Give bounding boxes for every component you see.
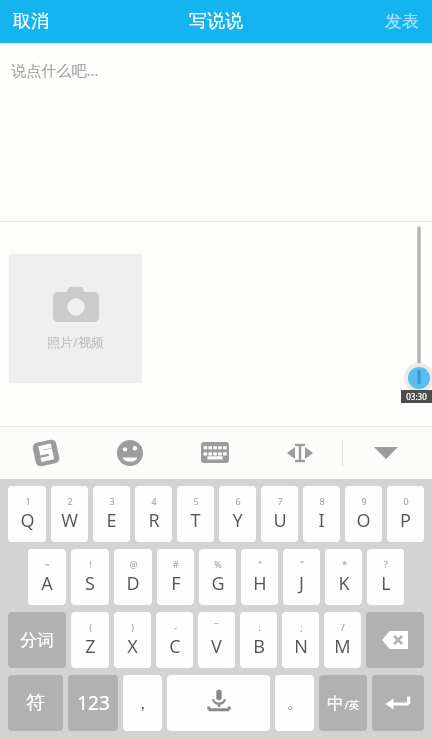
staticText: 4 bbox=[151, 495, 157, 507]
staticText: M bbox=[334, 634, 351, 659]
staticText: N bbox=[294, 634, 308, 659]
staticText: S bbox=[85, 571, 95, 596]
staticText: H bbox=[253, 571, 267, 596]
button[interactable]: 发表 bbox=[372, 0, 432, 43]
staticText: 写说说 bbox=[189, 10, 243, 33]
staticText: ; bbox=[300, 621, 303, 633]
button[interactable]: 符 bbox=[8, 675, 63, 731]
button[interactable]: 中 bbox=[319, 675, 367, 731]
button[interactable]: ! bbox=[71, 549, 109, 605]
staticText: “ bbox=[258, 558, 262, 570]
staticText: * bbox=[342, 558, 347, 570]
button[interactable]: ) bbox=[114, 612, 151, 668]
button[interactable]: * bbox=[325, 549, 362, 605]
button[interactable]: # bbox=[157, 549, 194, 605]
button[interactable]: 4 bbox=[135, 486, 172, 542]
staticText: P bbox=[400, 508, 411, 533]
button[interactable]: 分词 bbox=[8, 612, 66, 668]
button[interactable]: ? bbox=[367, 549, 404, 605]
staticText: ~ bbox=[44, 558, 50, 570]
staticText: 照片/视频 bbox=[47, 333, 104, 351]
button[interactable]: % bbox=[199, 549, 236, 605]
staticText: R bbox=[148, 508, 160, 533]
button[interactable]: 。 bbox=[275, 675, 314, 731]
button[interactable]: Space, voice input bbox=[167, 675, 270, 731]
staticText: K bbox=[338, 571, 350, 596]
staticText: /英 bbox=[344, 697, 360, 712]
staticText: Y bbox=[232, 508, 243, 533]
staticText: Q bbox=[20, 508, 35, 533]
button[interactable]: 8 bbox=[303, 486, 340, 542]
staticText: T bbox=[190, 508, 201, 533]
button[interactable]: Keyboard layout bbox=[172, 426, 257, 479]
staticText: 9 bbox=[361, 495, 367, 507]
staticText: - bbox=[174, 621, 177, 633]
button[interactable]: Emoji bbox=[88, 426, 172, 479]
button[interactable]: - bbox=[156, 612, 193, 668]
staticText: / bbox=[341, 621, 345, 633]
staticText: 6 bbox=[235, 495, 241, 507]
staticText: Z bbox=[85, 634, 96, 659]
button[interactable]: ” bbox=[283, 549, 320, 605]
button[interactable]: ; bbox=[282, 612, 319, 668]
staticText: V bbox=[211, 634, 222, 659]
button[interactable]: 取消 bbox=[0, 0, 62, 43]
button[interactable]: Move cursor bbox=[257, 426, 342, 479]
button[interactable]: 9 bbox=[345, 486, 382, 542]
button[interactable]: Backspace bbox=[366, 612, 424, 668]
button[interactable]: “ bbox=[241, 549, 278, 605]
staticText: 取消 bbox=[13, 10, 49, 33]
staticText: W bbox=[61, 508, 78, 533]
button[interactable]: / bbox=[324, 612, 361, 668]
button[interactable]: ¯ bbox=[198, 612, 235, 668]
staticText: ! bbox=[89, 558, 92, 570]
staticText: F bbox=[171, 571, 181, 596]
button[interactable]: @ bbox=[114, 549, 152, 605]
staticText: 说点什么吧... bbox=[11, 60, 99, 80]
button[interactable]: 123 bbox=[68, 675, 118, 731]
button[interactable]: Sogou input method bbox=[4, 426, 88, 479]
button[interactable]: Enter bbox=[372, 675, 424, 731]
button[interactable]: 0 bbox=[387, 486, 424, 542]
button[interactable]: 6 bbox=[219, 486, 256, 542]
staticText: U bbox=[273, 508, 287, 533]
button[interactable]: 3 bbox=[93, 486, 130, 542]
button[interactable]: : bbox=[240, 612, 277, 668]
staticText: L bbox=[381, 571, 391, 596]
staticText: 中 bbox=[327, 693, 344, 714]
staticText: G bbox=[211, 571, 225, 596]
staticText: ， bbox=[134, 693, 151, 714]
staticText: D bbox=[126, 571, 140, 596]
staticText: 8 bbox=[319, 495, 325, 507]
staticText: % bbox=[214, 558, 222, 570]
staticText: 123 bbox=[77, 690, 110, 716]
staticText: 5 bbox=[193, 495, 199, 507]
staticText: 1 bbox=[25, 495, 31, 507]
button[interactable]: 照片/视频 bbox=[9, 254, 142, 383]
staticText: # bbox=[173, 558, 179, 570]
staticText: ¯ bbox=[214, 621, 219, 633]
staticText: @ bbox=[129, 558, 138, 570]
staticText: 2 bbox=[67, 495, 73, 507]
staticText: J bbox=[299, 571, 304, 596]
staticText: 0 bbox=[403, 495, 409, 507]
staticText: B bbox=[253, 634, 265, 659]
button[interactable]: ~ bbox=[28, 549, 66, 605]
staticText: I bbox=[318, 508, 325, 533]
button[interactable]: 7 bbox=[261, 486, 298, 542]
button[interactable]: ， bbox=[123, 675, 162, 731]
button[interactable]: ( bbox=[71, 612, 109, 668]
staticText: E bbox=[106, 508, 117, 533]
staticText: 发表 bbox=[385, 11, 419, 32]
button[interactable]: Hide keyboard bbox=[343, 426, 428, 479]
staticText: ( bbox=[89, 621, 92, 633]
staticText: 符 bbox=[26, 691, 45, 715]
staticText: 03:30 bbox=[406, 391, 427, 402]
staticText: ? bbox=[384, 558, 388, 570]
button[interactable]: 5 bbox=[177, 486, 214, 542]
button[interactable]: 1 bbox=[8, 486, 46, 542]
button[interactable]: 写说说 bbox=[185, 6, 247, 37]
button[interactable]: 2 bbox=[51, 486, 88, 542]
button[interactable]: 说点什么吧... bbox=[0, 43, 432, 221]
staticText: : bbox=[258, 621, 261, 633]
